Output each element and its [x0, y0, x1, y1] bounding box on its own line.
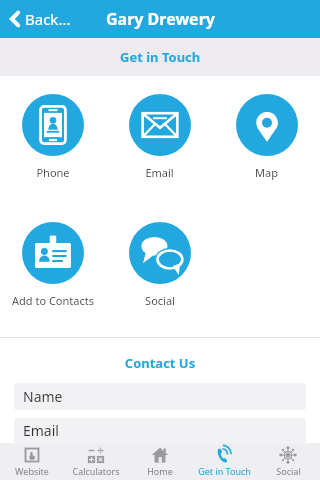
- button[interactable]: Phone: [0, 94, 106, 180]
- staticText: Email: [145, 165, 174, 180]
- staticText: Add to Contacts: [12, 293, 94, 308]
- button[interactable]: Email: [14, 418, 306, 443]
- staticText: Contact Us: [0, 354, 320, 372]
- staticText: Gary Drewery: [106, 8, 215, 30]
- staticText: Calculators: [72, 465, 120, 477]
- staticText: Website: [15, 465, 49, 477]
- staticText: Map: [255, 165, 278, 180]
- button[interactable]: Social: [256, 443, 320, 480]
- button[interactable]: Home: [128, 443, 192, 480]
- staticText: Phone: [36, 165, 70, 180]
- button[interactable]: Map: [213, 94, 320, 180]
- staticText: Social: [276, 465, 301, 477]
- staticText: Get in Touch: [198, 465, 251, 477]
- staticText: Get in Touch: [120, 48, 201, 66]
- button[interactable]: Email: [106, 94, 213, 180]
- button[interactable]: Social: [106, 222, 213, 308]
- button[interactable]: Add to Contacts: [0, 222, 106, 308]
- staticText: Home: [147, 465, 173, 477]
- staticText: Social: [145, 293, 175, 308]
- button[interactable]: Name: [14, 383, 306, 410]
- button[interactable]: Back...: [0, 5, 81, 33]
- button[interactable]: Get in Touch: [192, 443, 256, 480]
- staticText: Back...: [25, 9, 71, 29]
- staticText: Email: [23, 421, 59, 440]
- button[interactable]: Calculators: [64, 443, 128, 480]
- button[interactable]: Website: [0, 443, 64, 480]
- staticText: Name: [23, 387, 63, 406]
